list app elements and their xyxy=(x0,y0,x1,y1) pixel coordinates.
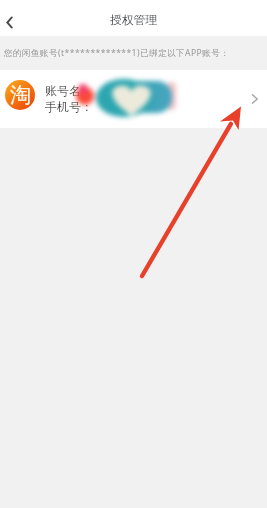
button[interactable]: Back xyxy=(0,3,30,33)
other: Open xyxy=(247,91,263,107)
staticText: 账号名 xyxy=(45,83,81,98)
staticText: 手机号： xyxy=(45,99,93,114)
staticText: 您的闲鱼账号(t*************1)已绑定以下APP账号： xyxy=(4,47,230,59)
staticText: 授权管理 xyxy=(110,13,158,28)
staticText: 淘 xyxy=(10,82,31,108)
button[interactable]: 淘 xyxy=(0,70,267,128)
